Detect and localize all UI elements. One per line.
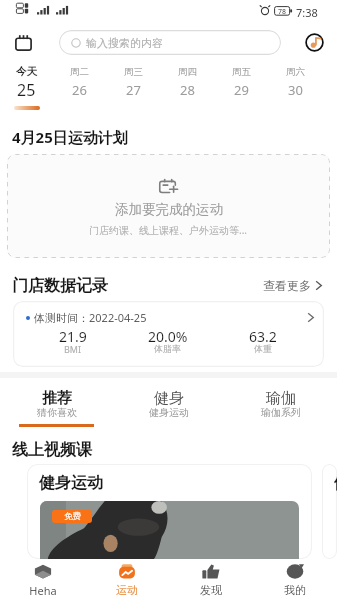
staticText: 输入搜索的内容 <box>86 36 163 50</box>
staticText: 63.2 <box>249 327 277 346</box>
staticText: 瑜伽系列 <box>261 406 301 419</box>
button[interactable]: Calendar <box>10 29 36 55</box>
staticText: 瑜伽 <box>266 389 296 408</box>
button[interactable]: 瑜伽 <box>225 378 337 428</box>
staticText: 21.9 <box>59 327 87 346</box>
staticText: 免费 <box>64 511 81 522</box>
staticText: 26 <box>72 81 87 99</box>
staticText: 添加要完成的运动 <box>115 201 223 218</box>
button[interactable]: 周二 <box>53 60 106 113</box>
staticText: 今天 <box>16 65 37 78</box>
button[interactable]: 查看更多 <box>263 274 322 297</box>
staticText: 门店数据记录 <box>12 276 108 296</box>
staticText: 7:38 <box>296 5 318 20</box>
staticText: 体测时间：2022-04-25 <box>34 310 147 325</box>
staticText: Heha <box>29 583 57 598</box>
button[interactable]: 周六 <box>268 60 322 113</box>
button[interactable]: 周四 <box>160 60 214 113</box>
button[interactable]: 体测时间：2022-04-25 <box>13 301 324 367</box>
button[interactable]: 今天 <box>0 60 53 113</box>
staticText: 发现 <box>200 583 222 597</box>
staticText: 27 <box>126 81 141 99</box>
staticText: 查看更多 <box>263 278 311 293</box>
staticText: 周四 <box>178 66 197 78</box>
button[interactable]: 发现 <box>169 559 253 600</box>
button[interactable]: 推荐 <box>0 378 113 428</box>
button[interactable]: 运动 <box>85 559 169 600</box>
button[interactable]: 周三 <box>106 60 160 113</box>
button[interactable]: 周五 <box>214 60 268 113</box>
staticText: 健身运动 <box>149 406 189 419</box>
staticText: 20.0% <box>148 327 188 346</box>
staticText: 周五 <box>232 66 251 78</box>
button[interactable]: 健身运动 <box>27 464 312 559</box>
staticText: 周六 <box>286 66 305 78</box>
staticText: 28 <box>180 81 195 99</box>
staticText: 体重 <box>254 343 272 354</box>
staticText: 4月25日运动计划 <box>12 127 128 147</box>
staticText: 健身 <box>154 389 184 408</box>
staticText: 体脂率 <box>154 343 181 354</box>
staticText: 线上视频课 <box>12 440 92 460</box>
staticText: 30 <box>288 81 303 99</box>
staticText: 健身运动 <box>334 473 337 493</box>
button[interactable]: Music <box>304 32 324 52</box>
button[interactable]: Heha <box>0 559 85 600</box>
button[interactable]: 健身 <box>113 378 225 428</box>
staticText: BMI <box>64 343 82 355</box>
staticText: 25 <box>17 79 36 101</box>
staticText: 29 <box>234 81 249 99</box>
staticText: 健身运动 <box>39 473 103 493</box>
staticText: 78 <box>278 7 287 17</box>
button[interactable]: 我的 <box>253 559 337 600</box>
staticText: 运动 <box>116 583 138 597</box>
staticText: 猜你喜欢 <box>37 406 77 419</box>
staticText: 周三 <box>124 66 143 78</box>
staticText: 我的 <box>284 583 306 597</box>
staticText: 周二 <box>70 66 89 78</box>
staticText: 推荐 <box>42 389 72 408</box>
button[interactable]: 添加要完成的运动 <box>7 154 330 258</box>
button[interactable]: 健身运动 <box>322 464 337 559</box>
staticText: 门店约课、线上课程、户外运动等... <box>89 223 248 237</box>
button[interactable]: 输入搜索的内容 <box>59 30 281 55</box>
